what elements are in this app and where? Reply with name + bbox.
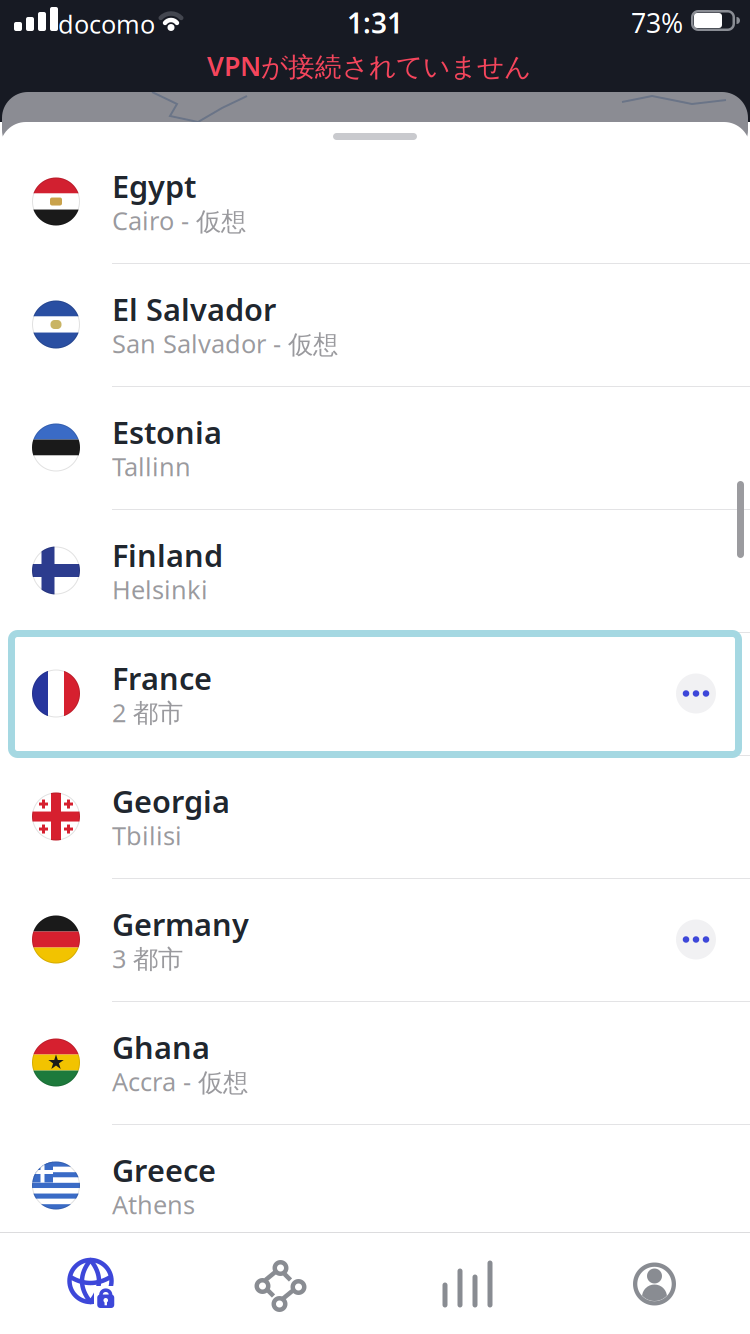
staticText: Egypt — [112, 166, 196, 206]
button[interactable]: Georgia — [0, 755, 750, 878]
button[interactable]: El Salvador — [0, 263, 750, 386]
staticText: Cairo - 仮想 — [112, 203, 246, 237]
staticText: 3 都市 — [112, 941, 183, 975]
button[interactable]: Germany — [0, 878, 750, 1001]
button[interactable]: Network — [187, 1234, 374, 1334]
staticText: 2 都市 — [112, 695, 183, 729]
button[interactable]: Statistics — [374, 1234, 561, 1334]
button[interactable]: Greece — [0, 1124, 750, 1247]
button[interactable]: VPN — [0, 1234, 187, 1334]
staticText: Greece — [112, 1150, 216, 1190]
button[interactable]: Egypt — [0, 140, 750, 263]
staticText: docomo — [58, 7, 155, 41]
staticText: VPNが接続されていません — [207, 48, 531, 84]
staticText: San Salvador - 仮想 — [112, 326, 338, 360]
staticText: Tallinn — [112, 449, 191, 483]
button[interactable]: Account — [561, 1234, 748, 1334]
staticText: El Salvador — [112, 289, 276, 329]
button[interactable]: More options — [676, 673, 716, 713]
staticText: Athens — [112, 1187, 195, 1221]
staticText: Tbilisi — [112, 818, 182, 852]
staticText: 73% — [631, 5, 683, 40]
staticText: Ghana — [112, 1027, 210, 1067]
staticText: Germany — [112, 904, 249, 944]
button[interactable]: More options — [676, 919, 716, 959]
staticText: Finland — [112, 535, 223, 575]
button[interactable]: Estonia — [0, 386, 750, 509]
staticText: Helsinki — [112, 572, 208, 606]
button[interactable]: Finland — [0, 509, 750, 632]
button[interactable]: Ghana — [0, 1001, 750, 1124]
staticText: France — [112, 658, 212, 698]
button[interactable]: France — [0, 632, 750, 755]
staticText: Georgia — [112, 781, 230, 821]
staticText: Estonia — [112, 412, 222, 452]
staticText: Accra - 仮想 — [112, 1064, 248, 1098]
staticText: 1:31 — [347, 4, 403, 41]
